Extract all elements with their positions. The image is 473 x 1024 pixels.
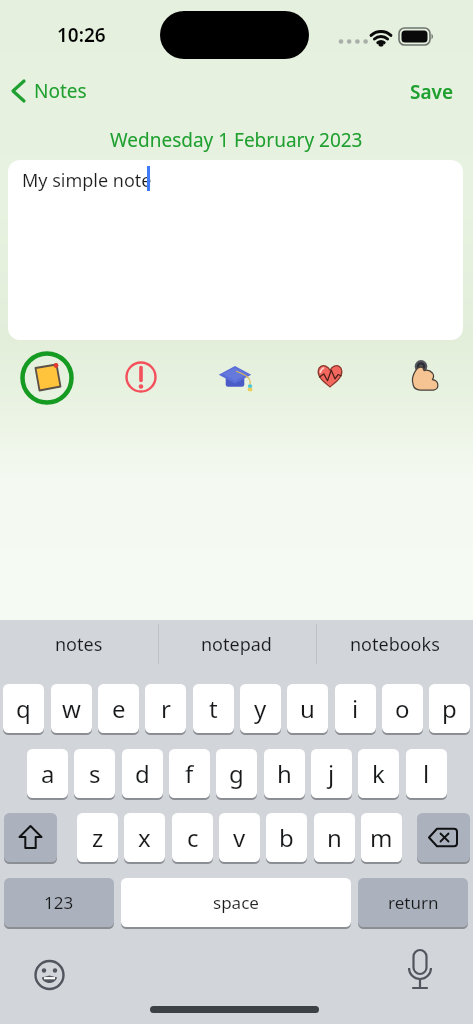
button[interactable]: g: [216, 749, 257, 798]
button[interactable]: h: [264, 749, 305, 798]
button[interactable]: [397, 349, 451, 403]
staticText: My simple note: [22, 168, 152, 193]
staticText: s: [89, 757, 101, 790]
button[interactable]: t: [193, 684, 234, 733]
staticText: notepad: [201, 632, 272, 657]
button[interactable]: m: [361, 813, 402, 862]
staticText: space: [213, 891, 259, 914]
button[interactable]: l: [406, 749, 447, 798]
button[interactable]: c: [172, 813, 213, 862]
button[interactable]: y: [240, 684, 281, 733]
staticText: t: [209, 692, 218, 725]
button[interactable]: v: [219, 813, 260, 862]
staticText: c: [187, 821, 199, 854]
button[interactable]: My simple note: [8, 160, 463, 340]
button[interactable]: return: [358, 878, 468, 927]
button[interactable]: i: [335, 684, 376, 733]
button[interactable]: Save: [398, 78, 454, 105]
staticText: n: [327, 821, 342, 854]
staticText: Save: [410, 79, 454, 105]
button[interactable]: space: [121, 878, 351, 927]
staticText: d: [135, 757, 150, 790]
staticText: p: [442, 692, 457, 725]
staticText: q: [16, 692, 31, 725]
staticText: notebooks: [350, 632, 440, 657]
staticText: u: [300, 692, 315, 725]
button[interactable]: k: [358, 749, 399, 798]
button[interactable]: 123: [4, 878, 114, 927]
button[interactable]: [28, 953, 72, 997]
button[interactable]: [208, 349, 262, 403]
staticText: a: [41, 757, 55, 790]
staticText: return: [388, 891, 439, 914]
button[interactable]: b: [266, 813, 307, 862]
button[interactable]: Notes: [6, 76, 106, 106]
button[interactable]: [4, 813, 57, 862]
button[interactable]: j: [311, 749, 352, 798]
staticText: 10:26: [57, 22, 106, 46]
button[interactable]: [398, 948, 442, 998]
button[interactable]: [114, 351, 168, 405]
staticText: m: [370, 821, 393, 854]
button[interactable]: x: [124, 813, 165, 862]
button[interactable]: u: [287, 684, 328, 733]
button[interactable]: n: [314, 813, 355, 862]
button[interactable]: o: [382, 684, 423, 733]
staticText: z: [92, 821, 104, 854]
button[interactable]: a: [27, 749, 68, 798]
staticText: 123: [44, 891, 74, 914]
button[interactable]: d: [122, 749, 163, 798]
staticText: w: [62, 692, 81, 725]
button[interactable]: notepad: [158, 622, 315, 666]
staticText: j: [328, 757, 335, 790]
staticText: Wednesday 1 February 2023: [110, 127, 363, 153]
staticText: o: [395, 692, 410, 725]
staticText: y: [254, 692, 267, 725]
button[interactable]: r: [145, 684, 186, 733]
button[interactable]: [303, 351, 357, 405]
button[interactable]: z: [77, 813, 118, 862]
staticText: l: [423, 757, 430, 790]
staticText: i: [352, 692, 359, 725]
staticText: k: [372, 757, 385, 790]
staticText: f: [185, 757, 194, 790]
button[interactable]: w: [51, 684, 92, 733]
button[interactable]: [20, 351, 74, 405]
staticText: e: [112, 692, 126, 725]
button[interactable]: p: [429, 684, 470, 733]
staticText: g: [229, 757, 244, 790]
button[interactable]: q: [3, 684, 44, 733]
button[interactable]: [417, 813, 470, 862]
staticText: notes: [55, 632, 103, 657]
staticText: Notes: [34, 78, 87, 104]
button[interactable]: s: [74, 749, 115, 798]
button[interactable]: notes: [0, 622, 157, 666]
staticText: x: [138, 821, 151, 854]
button[interactable]: notebooks: [316, 622, 473, 666]
button[interactable]: f: [169, 749, 210, 798]
button[interactable]: e: [98, 684, 139, 733]
staticText: b: [279, 821, 294, 854]
staticText: v: [233, 821, 246, 854]
staticText: r: [161, 692, 171, 725]
staticText: h: [277, 757, 292, 790]
